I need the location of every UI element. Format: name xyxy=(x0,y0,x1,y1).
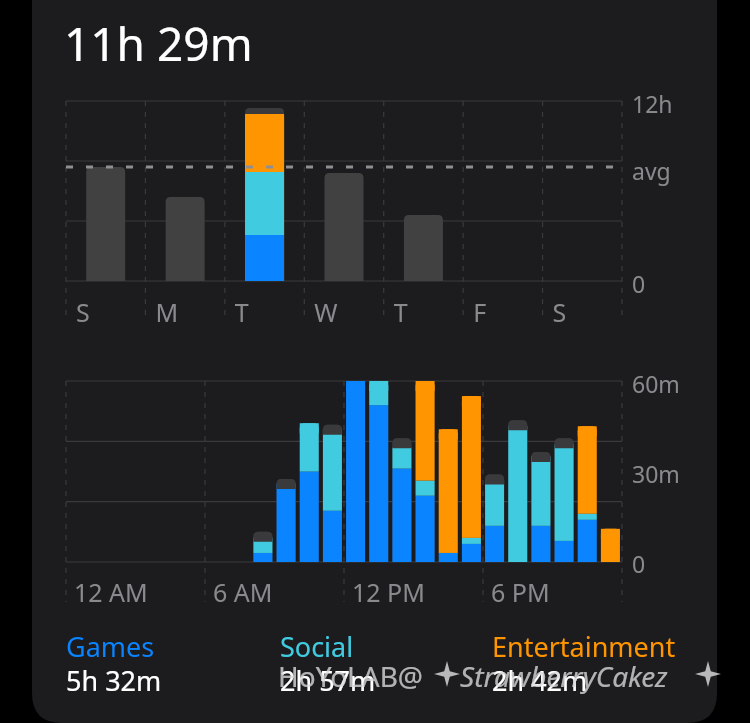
button[interactable]: Screen time report xyxy=(0,0,750,723)
